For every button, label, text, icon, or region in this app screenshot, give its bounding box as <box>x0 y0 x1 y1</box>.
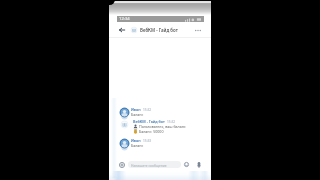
button[interactable]: Voice message <box>194 160 203 169</box>
staticText: Иван <box>131 138 141 143</box>
button[interactable]: Иван <box>109 139 211 149</box>
button[interactable]: ВебКМ - Гайд бот <box>109 120 211 135</box>
staticText: ВебКМ - Гайд бот <box>140 27 178 33</box>
staticText: ВебКМ - Гайд бот <box>133 119 165 124</box>
staticText: Пользователь, ваш баланс <box>139 124 186 129</box>
button[interactable]: Stickers <box>182 160 191 169</box>
staticText: Иван <box>131 107 141 112</box>
staticText: 15:33 <box>143 139 152 143</box>
button[interactable]: Напишите сообщение <box>128 161 181 168</box>
button[interactable]: Attach <box>117 160 126 169</box>
button[interactable]: Back <box>117 22 127 38</box>
staticText: 15:32 <box>143 108 152 112</box>
staticText: 12:34 <box>119 16 130 22</box>
staticText: Баланс: 50000 <box>139 129 164 134</box>
staticText: 15:32 <box>167 120 176 124</box>
staticText: Напишите сообщение <box>131 163 167 167</box>
button[interactable]: Иван <box>109 108 211 118</box>
button[interactable]: More options <box>191 22 204 38</box>
staticText: Баланс <box>131 143 144 148</box>
staticText: Баланс <box>131 112 144 117</box>
